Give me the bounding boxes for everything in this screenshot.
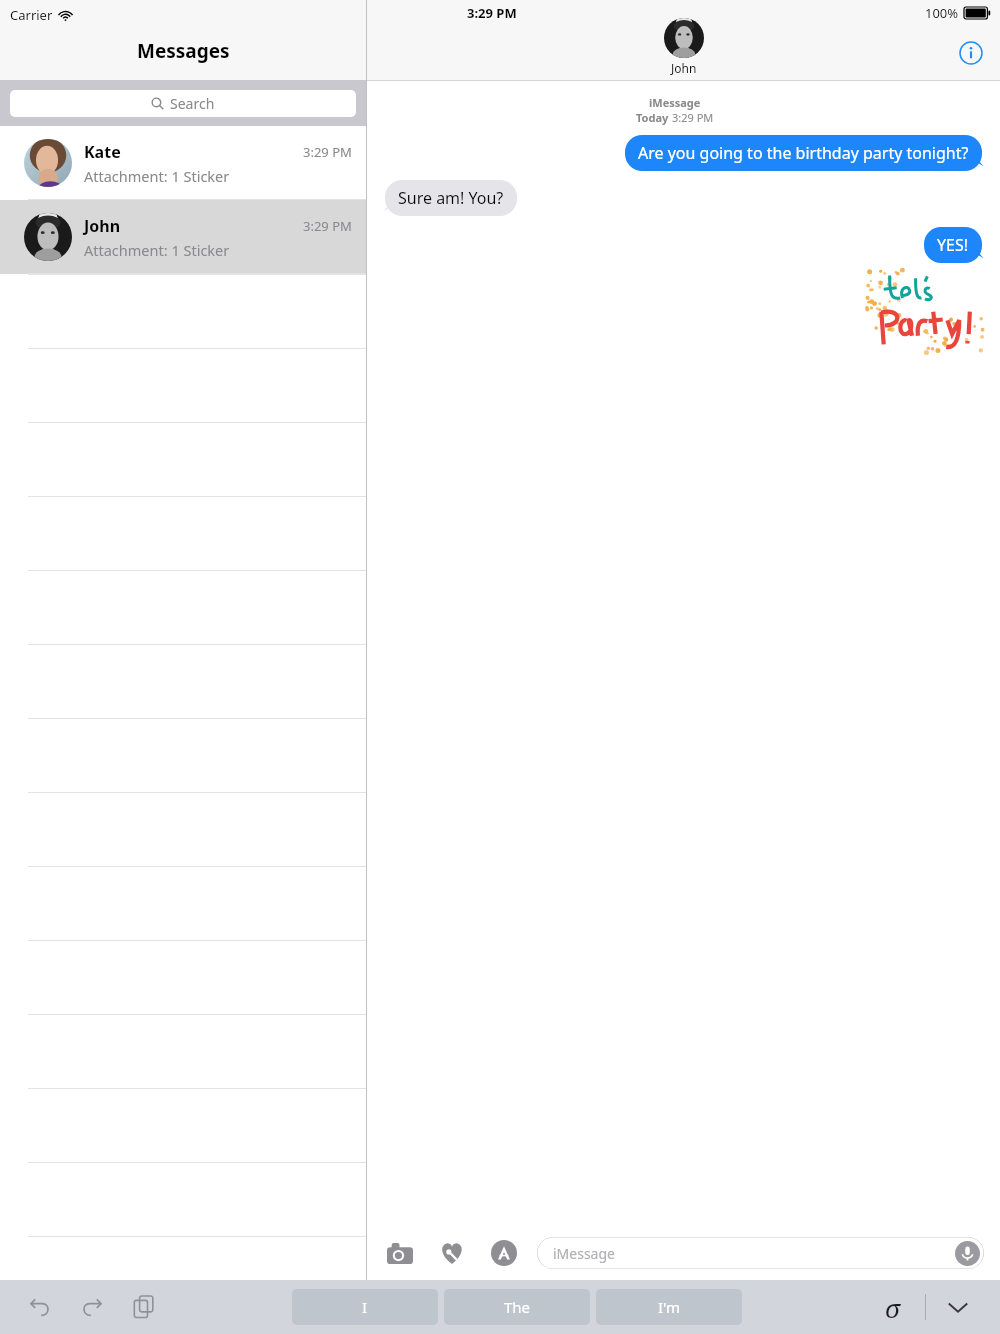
- button[interactable]: Kate: [0, 126, 366, 200]
- staticText: Are you going to the birthday party toni…: [638, 142, 969, 164]
- staticText: Attachment: 1 Sticker: [84, 166, 230, 186]
- button[interactable]: Digital Touch: [435, 1236, 469, 1270]
- staticText: iMessage: [649, 95, 701, 110]
- button[interactable]: Undo: [22, 1289, 58, 1325]
- button[interactable]: App Store: [487, 1236, 521, 1270]
- staticText: John: [84, 215, 121, 237]
- staticText: 3:29 PM: [303, 143, 352, 161]
- button[interactable]: Handwriting: [873, 1287, 913, 1327]
- button[interactable]: Details: [956, 38, 986, 68]
- button[interactable]: John: [0, 200, 366, 274]
- button[interactable]: Camera: [383, 1236, 417, 1270]
- button[interactable]: I: [292, 1289, 438, 1325]
- staticText: Carrier: [10, 6, 53, 24]
- staticText: Kate: [84, 141, 121, 163]
- button[interactable]: I'm: [596, 1289, 742, 1325]
- staticText: John: [671, 60, 697, 76]
- staticText: YES!: [937, 234, 969, 256]
- button[interactable]: YES!: [924, 227, 982, 263]
- staticText: 3:29 PM: [672, 110, 714, 125]
- staticText: Attachment: 1 Sticker: [84, 240, 230, 260]
- staticText: σ: [885, 1290, 901, 1325]
- staticText: iMessage: [553, 1244, 615, 1263]
- staticText: 100%: [925, 4, 959, 22]
- button[interactable]: Sure am! You?: [385, 180, 517, 216]
- button[interactable]: Search: [10, 90, 356, 117]
- button[interactable]: Redo: [74, 1289, 110, 1325]
- button[interactable]: Are you going to the birthday party toni…: [625, 135, 982, 171]
- staticText: 3:29 PM: [303, 217, 352, 235]
- button[interactable]: Hide keyboard: [938, 1287, 978, 1327]
- button[interactable]: iMessage: [537, 1237, 984, 1269]
- staticText: Sure am! You?: [398, 187, 504, 209]
- staticText: I'm: [658, 1297, 681, 1317]
- button[interactable]: Paste: [126, 1289, 162, 1325]
- staticText: 3:29 PM: [467, 4, 517, 22]
- staticText: I: [362, 1297, 368, 1317]
- staticText: Today: [636, 110, 672, 125]
- staticText: The: [504, 1297, 531, 1317]
- button[interactable]: The: [444, 1289, 590, 1325]
- staticText: Search: [170, 94, 215, 113]
- staticText: Messages: [137, 38, 230, 64]
